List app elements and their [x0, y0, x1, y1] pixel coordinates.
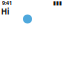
staticText: ▮▮▮ — [53, 0, 62, 6]
staticText: 9:41 — [2, 0, 12, 7]
staticText: Hi — [1, 6, 9, 17]
